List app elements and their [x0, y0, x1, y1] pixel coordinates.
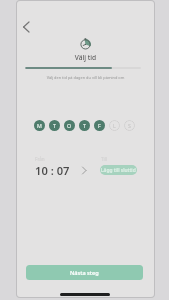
button[interactable]: L: [109, 120, 120, 131]
staticText: Till: [101, 156, 108, 162]
button[interactable]: Nästa steg: [26, 265, 143, 280]
other: Edit time: [82, 167, 86, 174]
button[interactable]: O: [64, 120, 75, 131]
staticText: Välj den tid på dagen du vill bli påmind…: [26, 75, 145, 80]
staticText: T: [83, 122, 86, 129]
button[interactable]: 10 : 07: [35, 163, 70, 178]
button[interactable]: T: [79, 120, 90, 131]
staticText: Nästa steg: [70, 269, 99, 277]
staticText: L: [113, 122, 116, 129]
button[interactable]: S: [124, 120, 135, 131]
staticText: M: [37, 122, 42, 129]
staticText: O: [67, 122, 72, 129]
staticText: Från: [35, 156, 45, 162]
button[interactable]: Lägg till sluttid: [100, 165, 137, 175]
staticText: Välj tid: [17, 53, 154, 62]
staticText: S: [128, 122, 131, 129]
staticText: Lägg till sluttid: [101, 167, 136, 174]
button[interactable]: F: [94, 120, 105, 131]
staticText: 10 : 07: [35, 163, 70, 178]
button[interactable]: M: [34, 120, 45, 131]
button[interactable]: Back: [17, 14, 34, 39]
staticText: T: [53, 122, 56, 129]
button[interactable]: T: [49, 120, 60, 131]
staticText: F: [98, 122, 101, 129]
